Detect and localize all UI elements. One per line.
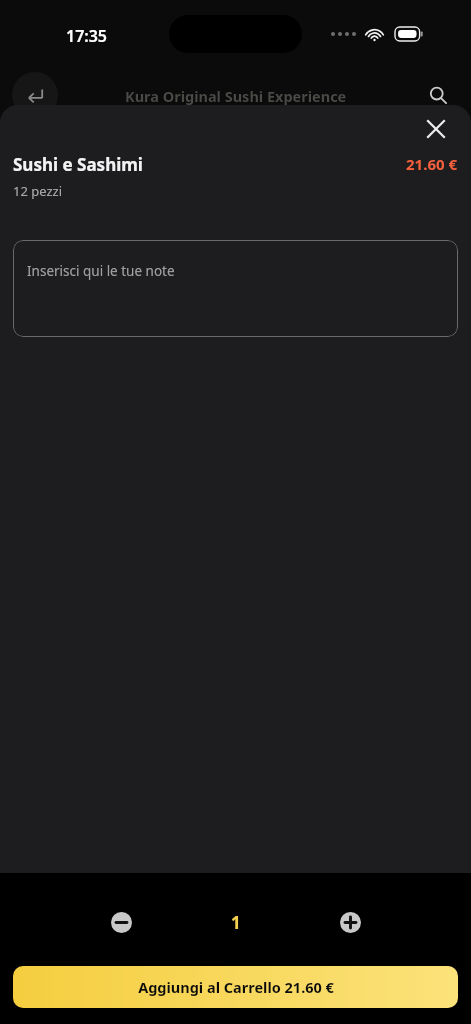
button[interactable]: Cerca <box>415 72 461 118</box>
staticText: 1 <box>231 911 241 934</box>
button[interactable]: Indietro <box>12 72 58 118</box>
button[interactable]: Chiudi <box>419 112 453 146</box>
staticText: Aggiungi al Carrello 21.60 € <box>138 977 334 997</box>
staticText: Inserisci qui le tue note <box>27 262 175 280</box>
staticText: 21.60 € <box>406 154 458 174</box>
staticText: 17:35 <box>66 25 108 47</box>
staticText: Sushi e Sashimi <box>13 153 143 176</box>
button[interactable]: Aumenta <box>333 905 367 939</box>
staticText: Kura Original Sushi Experience <box>125 86 347 106</box>
button[interactable]: Aggiungi al Carrello 21.60 € <box>13 966 458 1008</box>
button[interactable]: Inserisci qui le tue note <box>13 240 458 337</box>
staticText: 12 pezzi <box>13 182 63 200</box>
button[interactable]: Diminuisci <box>104 905 138 939</box>
